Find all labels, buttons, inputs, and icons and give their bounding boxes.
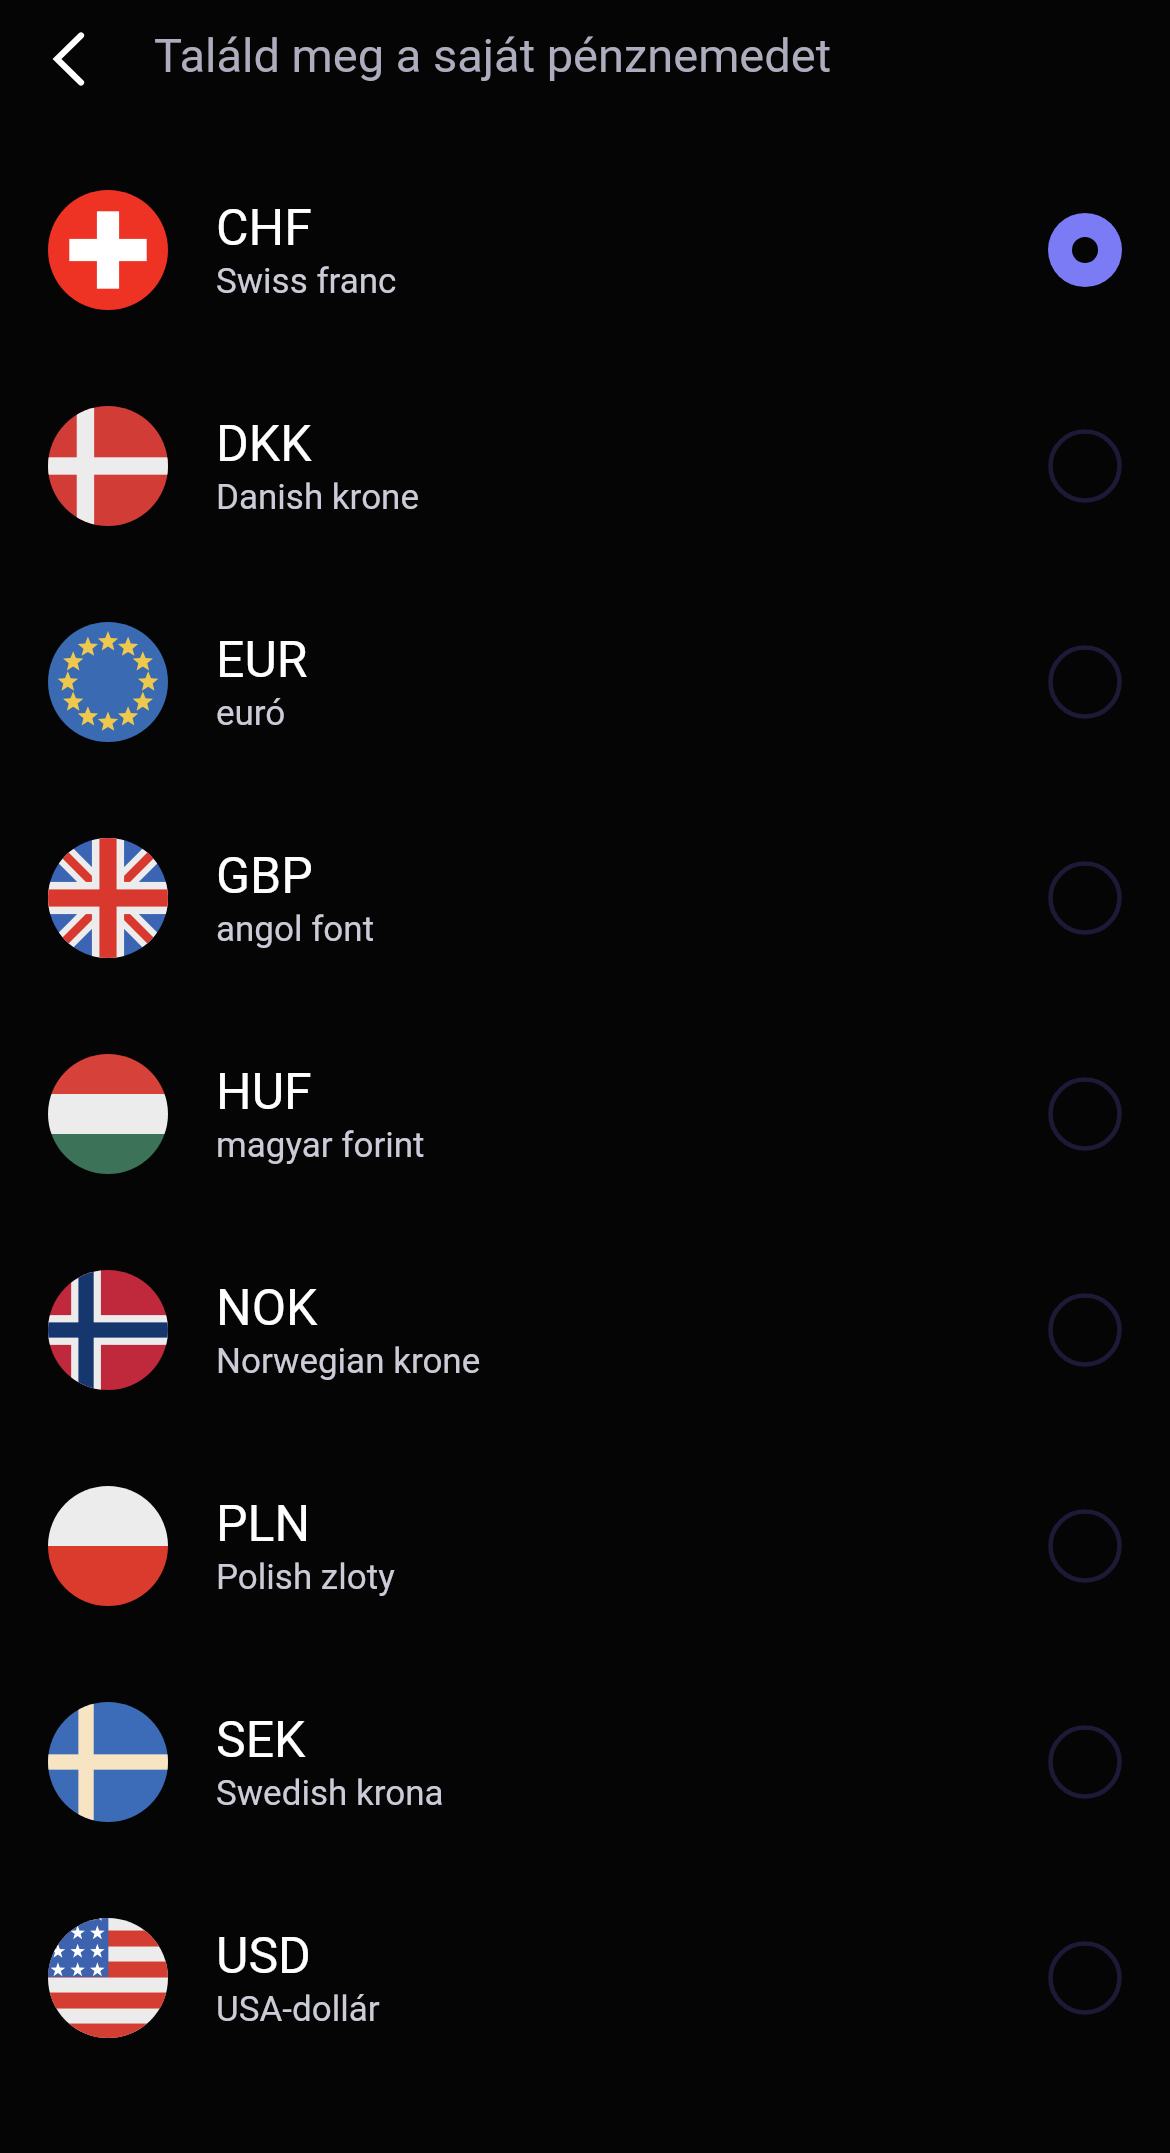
staticText: magyar forint xyxy=(216,1125,425,1166)
other: Select NOK xyxy=(1048,1293,1122,1367)
button[interactable]: CHF xyxy=(0,142,1170,358)
staticText: Swedish krona xyxy=(216,1773,444,1814)
button[interactable]: PLN xyxy=(0,1438,1170,1654)
staticText: euró xyxy=(216,693,286,734)
button[interactable]: DKK xyxy=(0,358,1170,574)
button[interactable]: EUR xyxy=(0,574,1170,790)
other: Select PLN xyxy=(1048,1509,1122,1583)
staticText: Norwegian krone xyxy=(216,1341,481,1382)
staticText: angol font xyxy=(216,909,375,950)
button[interactable]: USD xyxy=(0,1870,1170,2086)
staticText: Polish zloty xyxy=(216,1557,395,1598)
staticText: EUR xyxy=(216,631,308,690)
staticText: HUF xyxy=(216,1063,312,1122)
other: Select GBP xyxy=(1048,861,1122,935)
staticText: Swiss franc xyxy=(216,261,397,302)
other: Select SEK xyxy=(1048,1725,1122,1799)
staticText: DKK xyxy=(216,415,312,474)
staticText: GBP xyxy=(216,847,313,906)
staticText: USD xyxy=(216,1927,311,1986)
button[interactable]: Back xyxy=(21,11,117,107)
button[interactable]: NOK xyxy=(0,1222,1170,1438)
other: CHF selected xyxy=(1048,213,1122,287)
staticText: Találd meg a saját pénznemedet xyxy=(154,28,832,83)
button[interactable]: SEK xyxy=(0,1654,1170,1870)
staticText: Danish krone xyxy=(216,477,419,518)
button[interactable]: GBP xyxy=(0,790,1170,1006)
other: Select DKK xyxy=(1048,429,1122,503)
other: Select HUF xyxy=(1048,1077,1122,1151)
other: Select USD xyxy=(1048,1941,1122,2015)
staticText: NOK xyxy=(216,1279,318,1338)
other: Select EUR xyxy=(1048,645,1122,719)
staticText: PLN xyxy=(216,1495,311,1554)
staticText: SEK xyxy=(216,1711,306,1770)
staticText: USA-dollár xyxy=(216,1989,380,2030)
button[interactable]: HUF xyxy=(0,1006,1170,1222)
staticText: CHF xyxy=(216,199,312,258)
